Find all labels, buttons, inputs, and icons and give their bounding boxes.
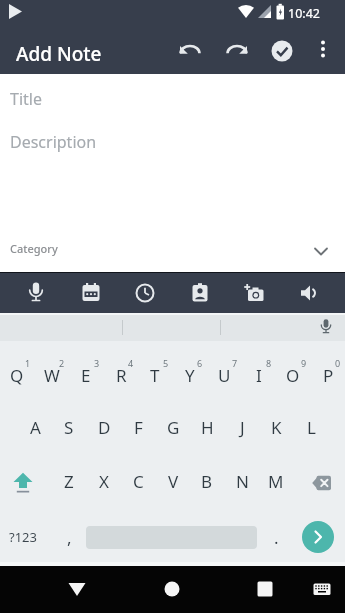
button[interactable]: S xyxy=(52,403,86,451)
button[interactable] xyxy=(71,273,111,313)
button[interactable] xyxy=(312,313,340,341)
staticText: . xyxy=(274,526,279,549)
staticText: P xyxy=(323,364,334,387)
button[interactable]: T xyxy=(138,351,172,399)
button[interactable]: W xyxy=(35,351,69,399)
staticText: Z xyxy=(64,470,74,493)
staticText: 7 xyxy=(232,357,238,369)
button[interactable] xyxy=(299,457,345,505)
button[interactable]: . xyxy=(259,513,293,561)
staticText: O xyxy=(286,364,300,387)
staticText: I xyxy=(256,364,262,387)
button[interactable] xyxy=(234,273,274,313)
staticText: B xyxy=(201,470,213,493)
staticText: S xyxy=(64,416,74,439)
staticText: E xyxy=(81,364,91,387)
staticText: Title xyxy=(10,88,42,110)
staticText: 8 xyxy=(266,357,272,369)
button[interactable]: G xyxy=(156,403,190,451)
staticText: J xyxy=(240,416,245,439)
button[interactable]: J xyxy=(225,403,259,451)
button[interactable] xyxy=(174,36,206,68)
staticText: K xyxy=(271,416,282,439)
staticText: D xyxy=(98,416,111,439)
staticText: X xyxy=(99,470,109,493)
staticText: Add Note xyxy=(16,41,102,67)
button[interactable]: K xyxy=(259,403,293,451)
staticText: 6 xyxy=(197,357,203,369)
staticText: Y xyxy=(185,364,195,387)
staticText: 10:42 xyxy=(288,5,320,22)
button[interactable] xyxy=(0,457,46,505)
staticText: R xyxy=(116,364,127,387)
button[interactable]: V xyxy=(156,457,190,505)
staticText: V xyxy=(168,470,179,493)
staticText: L xyxy=(307,416,316,439)
staticText: G xyxy=(167,416,180,439)
staticText: H xyxy=(201,416,214,439)
staticText: Q xyxy=(10,364,24,387)
button[interactable]: X xyxy=(87,457,121,505)
button[interactable] xyxy=(16,273,56,313)
button[interactable]: ?123 xyxy=(0,513,46,561)
button[interactable]: I xyxy=(242,351,276,399)
staticText: ?123 xyxy=(9,528,37,546)
button[interactable]: M xyxy=(259,457,293,505)
staticText: 9 xyxy=(301,357,307,369)
button[interactable] xyxy=(180,273,220,313)
staticText: 4 xyxy=(128,357,134,369)
button[interactable] xyxy=(309,33,337,65)
button[interactable]: U xyxy=(207,351,241,399)
staticText: 5 xyxy=(163,357,169,369)
staticText: F xyxy=(134,416,143,439)
button[interactable] xyxy=(266,35,298,67)
staticText: Category xyxy=(10,241,58,256)
button[interactable] xyxy=(152,569,192,609)
button[interactable] xyxy=(245,569,285,609)
staticText: 1 xyxy=(25,357,31,369)
button[interactable] xyxy=(125,273,165,313)
button[interactable]: E xyxy=(69,351,103,399)
button[interactable]: R xyxy=(104,351,138,399)
staticText: W xyxy=(44,364,60,387)
staticText: U xyxy=(218,364,231,387)
staticText: M xyxy=(268,470,284,493)
staticText: C xyxy=(133,470,144,493)
button[interactable]: L xyxy=(294,403,328,451)
staticText: , xyxy=(67,526,72,549)
button[interactable]: A xyxy=(18,403,52,451)
button[interactable]: Y xyxy=(173,351,207,399)
staticText: A xyxy=(30,416,41,439)
button[interactable]: Q xyxy=(0,351,34,399)
button[interactable] xyxy=(289,273,329,313)
button[interactable]: O xyxy=(276,351,310,399)
button[interactable]: C xyxy=(121,457,155,505)
staticText: 0 xyxy=(335,357,341,369)
button[interactable]: H xyxy=(190,403,224,451)
staticText: Description xyxy=(10,131,97,153)
button[interactable] xyxy=(221,36,253,68)
button[interactable] xyxy=(308,575,336,603)
button[interactable] xyxy=(57,569,97,609)
staticText: 2 xyxy=(59,357,65,369)
button[interactable] xyxy=(302,521,334,553)
staticText: T xyxy=(150,364,160,387)
button[interactable]: F xyxy=(121,403,155,451)
button[interactable]: Category xyxy=(0,239,345,269)
button[interactable]: B xyxy=(190,457,224,505)
staticText: N xyxy=(236,470,249,493)
button[interactable]: , xyxy=(52,513,86,561)
staticText: 3 xyxy=(94,357,100,369)
button[interactable]: D xyxy=(87,403,121,451)
button[interactable]: N xyxy=(225,457,259,505)
button[interactable]: P xyxy=(311,351,345,399)
button[interactable]: Z xyxy=(52,457,86,505)
